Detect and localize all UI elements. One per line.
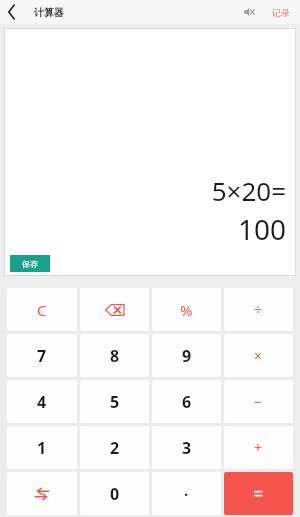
button[interactable]: = <box>224 472 293 515</box>
button[interactable]: · <box>152 472 221 515</box>
staticText: 1 <box>37 437 47 459</box>
staticText: + <box>254 438 263 457</box>
button[interactable]: 8 <box>80 334 149 377</box>
staticText: 0 <box>110 483 120 505</box>
staticText: · <box>184 484 189 504</box>
staticText: 7 <box>37 345 47 367</box>
staticText: × <box>254 346 263 365</box>
button[interactable]: 3 <box>152 426 221 469</box>
button[interactable]: + <box>224 426 293 469</box>
button[interactable]: 2 <box>80 426 149 469</box>
button[interactable]: Swap <box>7 472 77 515</box>
button[interactable]: 4 <box>7 380 77 423</box>
staticText: 计算器 <box>34 6 64 19</box>
staticText: 6 <box>182 391 192 413</box>
button[interactable]: Mute sound <box>238 1 260 23</box>
staticText: C <box>37 300 47 320</box>
staticText: 4 <box>37 391 47 413</box>
staticText: 记录 <box>272 7 290 18</box>
staticText: ÷ <box>254 300 263 319</box>
staticText: − <box>254 392 263 411</box>
button[interactable]: 5 <box>80 380 149 423</box>
staticText: 保存 <box>22 259 38 269</box>
button[interactable]: 保存 <box>10 255 50 272</box>
staticText: 5×20= <box>211 173 286 208</box>
staticText: 3 <box>182 437 192 459</box>
button[interactable]: 9 <box>152 334 221 377</box>
staticText: 8 <box>110 345 120 367</box>
button[interactable]: 记录 <box>270 5 292 20</box>
button[interactable]: C <box>7 288 77 331</box>
button[interactable]: 6 <box>152 380 221 423</box>
staticText: % <box>180 300 193 320</box>
staticText: 9 <box>182 345 192 367</box>
staticText: = <box>253 481 264 506</box>
button[interactable]: 0 <box>80 472 149 515</box>
staticText: 5 <box>110 391 120 413</box>
button[interactable]: % <box>152 288 221 331</box>
button[interactable]: Back <box>0 0 24 24</box>
staticText: 2 <box>110 437 120 459</box>
button[interactable]: − <box>224 380 293 423</box>
staticText: 100 <box>237 210 286 248</box>
button[interactable]: × <box>224 334 293 377</box>
button[interactable]: Backspace <box>80 288 149 331</box>
button[interactable]: 1 <box>7 426 77 469</box>
button[interactable]: ÷ <box>224 288 293 331</box>
button[interactable]: 7 <box>7 334 77 377</box>
